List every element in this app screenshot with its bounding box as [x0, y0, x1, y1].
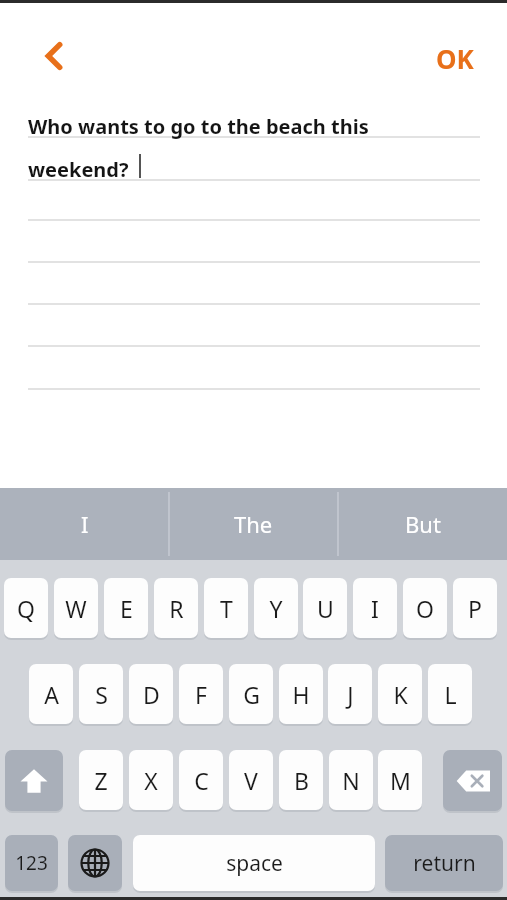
- staticText: K: [393, 679, 408, 710]
- staticText: return: [413, 849, 476, 878]
- button[interactable]: G: [229, 664, 273, 724]
- button[interactable]: S: [79, 664, 123, 724]
- staticText: O: [416, 593, 434, 624]
- staticText: D: [143, 679, 160, 710]
- staticText: A: [44, 679, 59, 710]
- staticText: T: [220, 593, 233, 624]
- staticText: V: [244, 765, 258, 796]
- button[interactable]: P: [453, 578, 497, 638]
- button[interactable]: C: [179, 750, 223, 810]
- button[interactable]: F: [179, 664, 223, 724]
- staticText: B: [294, 765, 309, 796]
- button[interactable]: W: [54, 578, 98, 638]
- button[interactable]: Backspace: [443, 750, 502, 811]
- staticText: M: [390, 765, 411, 796]
- button[interactable]: Back: [28, 30, 80, 82]
- staticText: 123: [15, 850, 48, 876]
- button[interactable]: But: [338, 488, 507, 560]
- button[interactable]: I: [353, 578, 397, 638]
- staticText: F: [195, 679, 207, 710]
- button[interactable]: U: [303, 578, 347, 638]
- button[interactable]: I: [0, 488, 169, 560]
- staticText: OK: [436, 41, 474, 76]
- staticText: L: [444, 679, 457, 710]
- staticText: J: [347, 679, 354, 710]
- button[interactable]: O: [403, 578, 447, 638]
- button[interactable]: A: [29, 664, 73, 724]
- button[interactable]: M: [378, 750, 422, 810]
- staticText: X: [144, 765, 158, 796]
- button[interactable]: R: [154, 578, 198, 638]
- button[interactable]: K: [378, 664, 422, 724]
- button[interactable]: 123: [5, 835, 58, 891]
- button[interactable]: X: [129, 750, 173, 810]
- button[interactable]: Z: [79, 750, 123, 810]
- staticText: N: [342, 765, 360, 796]
- staticText: S: [95, 679, 108, 710]
- staticText: G: [243, 679, 260, 710]
- button[interactable]: Change keyboard: [68, 835, 122, 891]
- button[interactable]: N: [329, 750, 373, 810]
- button[interactable]: B: [279, 750, 323, 810]
- staticText: Z: [94, 765, 108, 796]
- staticText: Q: [17, 593, 35, 624]
- staticText: I: [81, 509, 89, 539]
- staticText: weekend?: [28, 156, 129, 183]
- button[interactable]: L: [428, 664, 472, 724]
- button[interactable]: Shift: [5, 750, 63, 811]
- staticText: P: [468, 593, 482, 624]
- button[interactable]: J: [328, 664, 372, 724]
- staticText: E: [120, 593, 133, 624]
- button[interactable]: space: [133, 835, 375, 891]
- button[interactable]: OK: [418, 36, 492, 80]
- staticText: C: [194, 765, 209, 796]
- staticText: space: [226, 849, 283, 878]
- staticText: R: [169, 593, 184, 624]
- button[interactable]: D: [129, 664, 173, 724]
- button[interactable]: Q: [4, 578, 48, 638]
- staticText: U: [317, 593, 334, 624]
- staticText: H: [292, 679, 310, 710]
- staticText: The: [234, 509, 273, 539]
- staticText: But: [405, 509, 441, 539]
- button[interactable]: Y: [254, 578, 298, 638]
- button[interactable]: T: [204, 578, 248, 638]
- staticText: W: [65, 593, 87, 624]
- button[interactable]: V: [229, 750, 273, 810]
- staticText: I: [371, 593, 379, 624]
- staticText: Who wants to go to the beach this: [28, 113, 369, 140]
- button[interactable]: E: [104, 578, 148, 638]
- staticText: Y: [269, 593, 283, 624]
- button[interactable]: return: [385, 835, 503, 891]
- button[interactable]: H: [279, 664, 323, 724]
- button[interactable]: The: [169, 488, 338, 560]
